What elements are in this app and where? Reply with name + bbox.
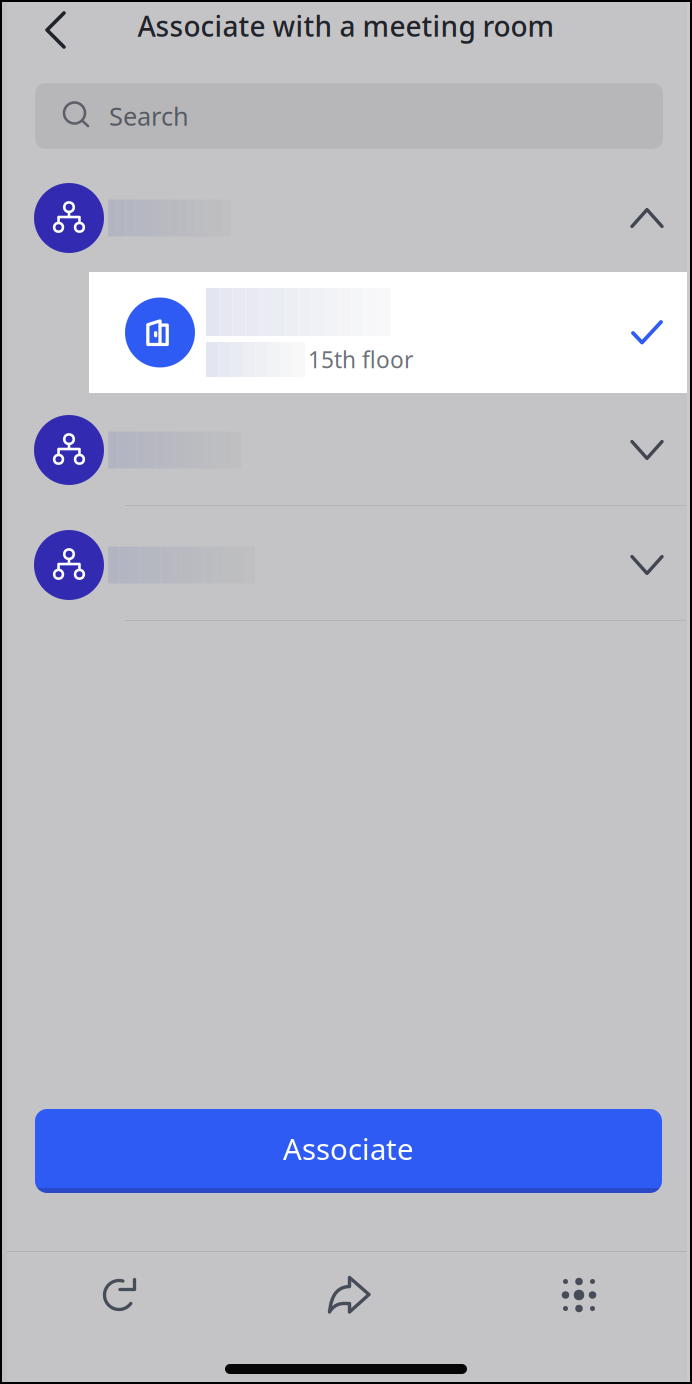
staticText: Associate	[283, 1129, 414, 1168]
button[interactable]: Search	[2, 62, 690, 149]
button[interactable]	[2, 530, 690, 600]
button[interactable]: Share	[294, 1257, 404, 1333]
button[interactable]	[2, 183, 690, 253]
button[interactable]: Reload	[64, 1257, 174, 1333]
staticText: 15th floor	[308, 344, 413, 374]
button[interactable]: 15th floor	[2, 253, 690, 393]
staticText: Search	[109, 99, 189, 133]
button[interactable]	[2, 415, 690, 485]
staticText: Associate with a meeting room	[137, 7, 554, 45]
button[interactable]: Associate	[2, 1109, 690, 1251]
button[interactable]: More	[524, 1257, 634, 1333]
button[interactable]: Back	[2, 2, 82, 62]
